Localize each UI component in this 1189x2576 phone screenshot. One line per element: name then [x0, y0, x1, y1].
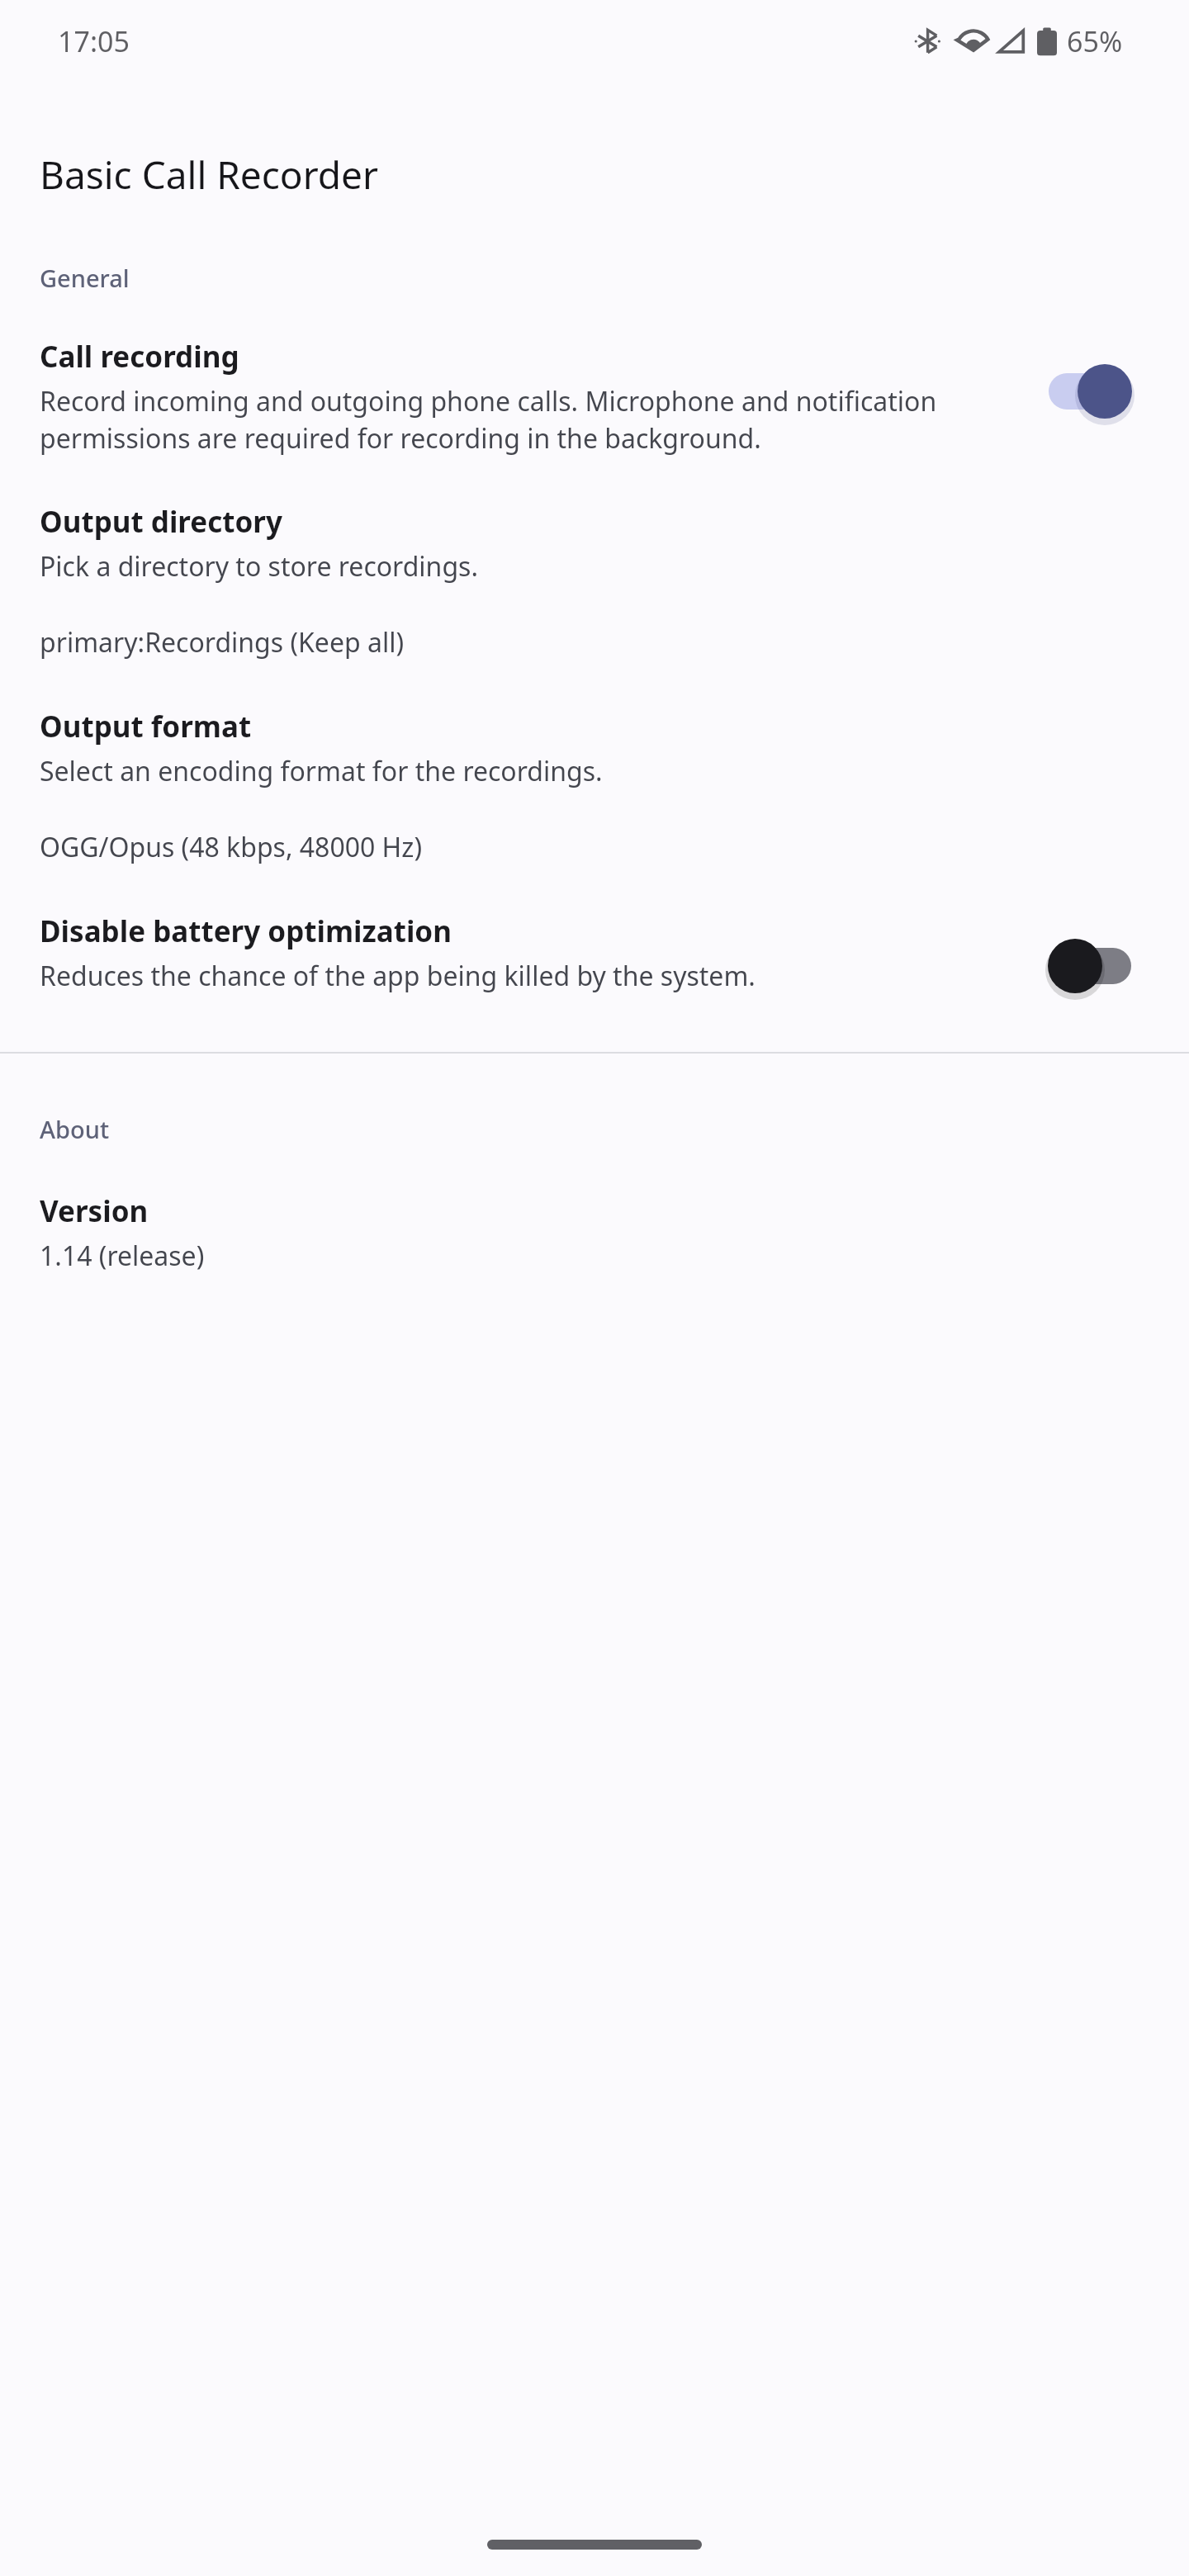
staticText: 65% — [1067, 22, 1123, 60]
button[interactable]: Output directory — [0, 502, 1189, 661]
staticText: Select an encoding format for the record… — [40, 753, 952, 789]
staticText: 17:05 — [58, 22, 130, 60]
button[interactable]: Call recording — [0, 337, 1189, 456]
staticText: primary:Recordings (Keep all) — [40, 624, 404, 661]
staticText: Record incoming and outgoing phone calls… — [40, 383, 952, 456]
button[interactable]: Version — [0, 1191, 1189, 1274]
button[interactable]: Disable battery optimization — [0, 912, 1189, 999]
staticText: OGG/Opus (48 kbps, 48000 Hz) — [40, 829, 422, 865]
staticText: About — [40, 1113, 109, 1145]
staticText: Basic Call Recorder — [40, 149, 378, 201]
button[interactable]: Output format — [0, 707, 1189, 865]
staticText: Disable battery optimization — [40, 912, 452, 951]
staticText: Pick a directory to store recordings. — [40, 548, 952, 585]
staticText: Call recording — [40, 337, 239, 376]
staticText: 1.14 (release) — [40, 1238, 952, 1274]
staticText: Reduces the chance of the app being kill… — [40, 958, 997, 994]
staticText: General — [40, 262, 130, 294]
staticText: Output format — [40, 707, 252, 746]
button[interactable]: Disable battery optimization, off — [1047, 933, 1156, 999]
staticText: Version — [40, 1191, 149, 1231]
button[interactable]: Call recording enabled — [1047, 358, 1156, 424]
staticText: Output directory — [40, 502, 282, 542]
